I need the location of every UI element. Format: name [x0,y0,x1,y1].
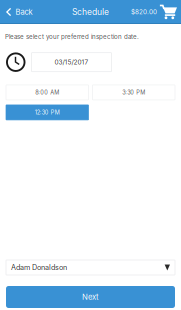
staticText: 03/15/2017 [54,58,88,66]
staticText: $820.00 [131,8,157,16]
button[interactable]: $820.00 [131,0,181,24]
staticText: 8:00 AM [35,89,59,96]
button[interactable]: Next [6,286,175,308]
button[interactable]: Back [0,0,38,24]
staticText: Next [82,292,99,302]
staticText: Please select your preferred inspection … [5,33,139,40]
staticText: 12:30 PM [35,109,60,116]
button[interactable]: 8:00 AM [6,85,88,100]
staticText: Back [15,7,32,17]
staticText: Schedule [72,7,109,17]
button[interactable]: Adam Donaldson [6,260,175,275]
button[interactable]: 3:30 PM [92,85,175,100]
button[interactable]: 12:30 PM [6,105,88,120]
staticText: 3:30 PM [122,89,145,96]
button[interactable]: 03/15/2017 [31,53,111,72]
staticText: Adam Donaldson [11,263,67,272]
